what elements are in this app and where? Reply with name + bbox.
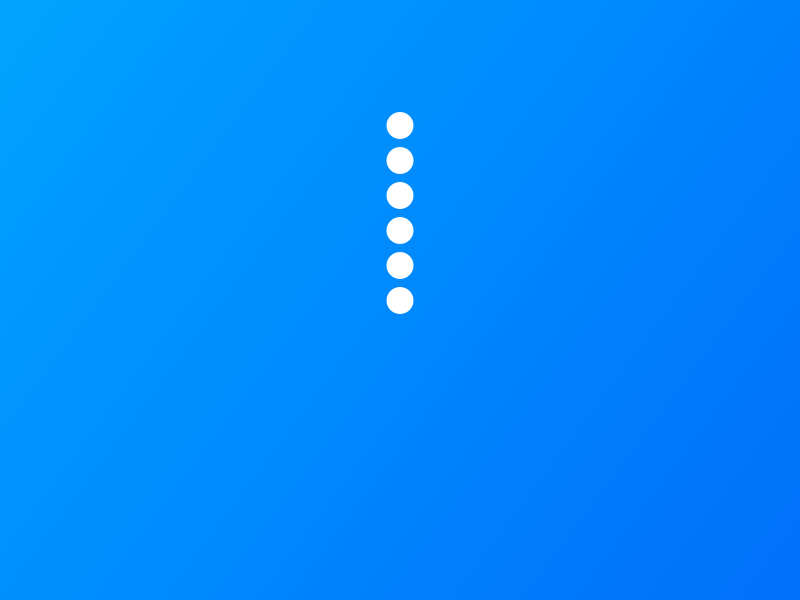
button[interactable]: Item 4 (386, 217, 413, 244)
button[interactable]: Item 3 (386, 182, 413, 209)
button[interactable]: Item 1 (386, 112, 413, 139)
button[interactable]: Item 5 (386, 252, 413, 279)
button[interactable]: Item 2 (386, 147, 413, 174)
button[interactable]: Item 6 (386, 287, 413, 314)
